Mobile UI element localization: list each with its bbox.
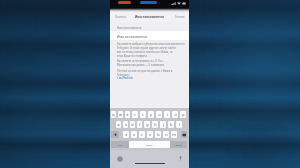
staticText: Имя пользователя [117, 26, 142, 30]
button[interactable]: j [160, 121, 166, 128]
staticText: По этой ссылке откроется диалог с Вами в… [117, 69, 173, 77]
button[interactable]: w [118, 111, 123, 118]
button[interactable]: i [164, 111, 170, 118]
button[interactable]: o [172, 111, 178, 118]
button[interactable]: Backspace [181, 131, 187, 138]
button[interactable]: c [139, 131, 145, 138]
button[interactable]: y [148, 111, 154, 118]
staticText: k [170, 122, 172, 127]
staticText: q [112, 112, 115, 117]
staticText: x [133, 132, 135, 137]
staticText: Имя пользователя [117, 34, 147, 38]
staticText: Вы можете выбрать публичное имя пользова… [117, 42, 185, 58]
button[interactable]: Status badge [140, 1, 157, 4]
button[interactable]: Emoji keyboard [117, 156, 123, 162]
button[interactable]: return [170, 141, 187, 148]
button[interactable]: s [123, 121, 128, 128]
button[interactable]: Готово [175, 15, 185, 19]
button[interactable]: n [163, 131, 169, 138]
staticText: w [119, 112, 122, 117]
button[interactable]: h [152, 121, 158, 128]
staticText: j [163, 122, 164, 127]
staticText: a [117, 122, 120, 127]
button[interactable]: Shift [111, 131, 119, 138]
button[interactable]: p [180, 111, 186, 118]
staticText: l [179, 122, 180, 127]
staticText: o [174, 112, 177, 117]
button[interactable]: v [147, 131, 153, 138]
button[interactable]: r [132, 111, 138, 118]
staticText: m [172, 132, 176, 137]
staticText: return [175, 143, 183, 146]
staticText: z [125, 132, 127, 137]
button[interactable]: q [111, 111, 116, 118]
button[interactable]: x [131, 131, 137, 138]
button[interactable]: t [140, 111, 146, 118]
staticText: g [146, 122, 149, 127]
staticText: Отмена [115, 15, 126, 19]
button[interactable]: a [116, 121, 121, 128]
staticText: v [149, 132, 151, 137]
button[interactable]: 123 [111, 141, 129, 148]
staticText: c [141, 132, 143, 137]
staticText: b [157, 132, 160, 137]
staticText: p [182, 112, 185, 117]
staticText: e [126, 112, 129, 117]
button[interactable]: Отмена [115, 15, 126, 19]
button[interactable]: e [125, 111, 130, 118]
staticText: space [146, 143, 153, 146]
staticText: s [125, 122, 127, 127]
staticText: Вы можете использовать a-z, 0-9 и... Мин… [117, 59, 165, 67]
button[interactable]: Имя пользователя [110, 31, 189, 40]
button[interactable]: u [156, 111, 162, 118]
staticText: Имя пользователя [135, 15, 164, 19]
staticText: u [158, 112, 161, 117]
staticText: r [134, 112, 136, 117]
button[interactable]: Voice input [178, 156, 183, 161]
button[interactable]: t.me/hishnik [117, 76, 133, 80]
button[interactable]: k [168, 121, 174, 128]
button[interactable]: b [155, 131, 161, 138]
staticText: n [165, 132, 168, 137]
button[interactable]: g [144, 121, 150, 128]
staticText: Готово [175, 15, 185, 19]
staticText: h [154, 122, 157, 127]
staticText: 123 [118, 143, 123, 146]
button[interactable]: f [137, 121, 142, 128]
button[interactable]: l [176, 121, 182, 128]
staticText: y [150, 112, 152, 117]
staticText: d [131, 122, 134, 127]
button[interactable]: z [123, 131, 129, 138]
staticText: i [167, 112, 168, 117]
button[interactable]: d [130, 121, 135, 128]
staticText: f [139, 122, 141, 127]
button[interactable]: space [129, 141, 170, 148]
button[interactable]: Recording [118, 1, 131, 4]
staticText: t [142, 112, 144, 117]
button[interactable]: m [171, 131, 177, 138]
